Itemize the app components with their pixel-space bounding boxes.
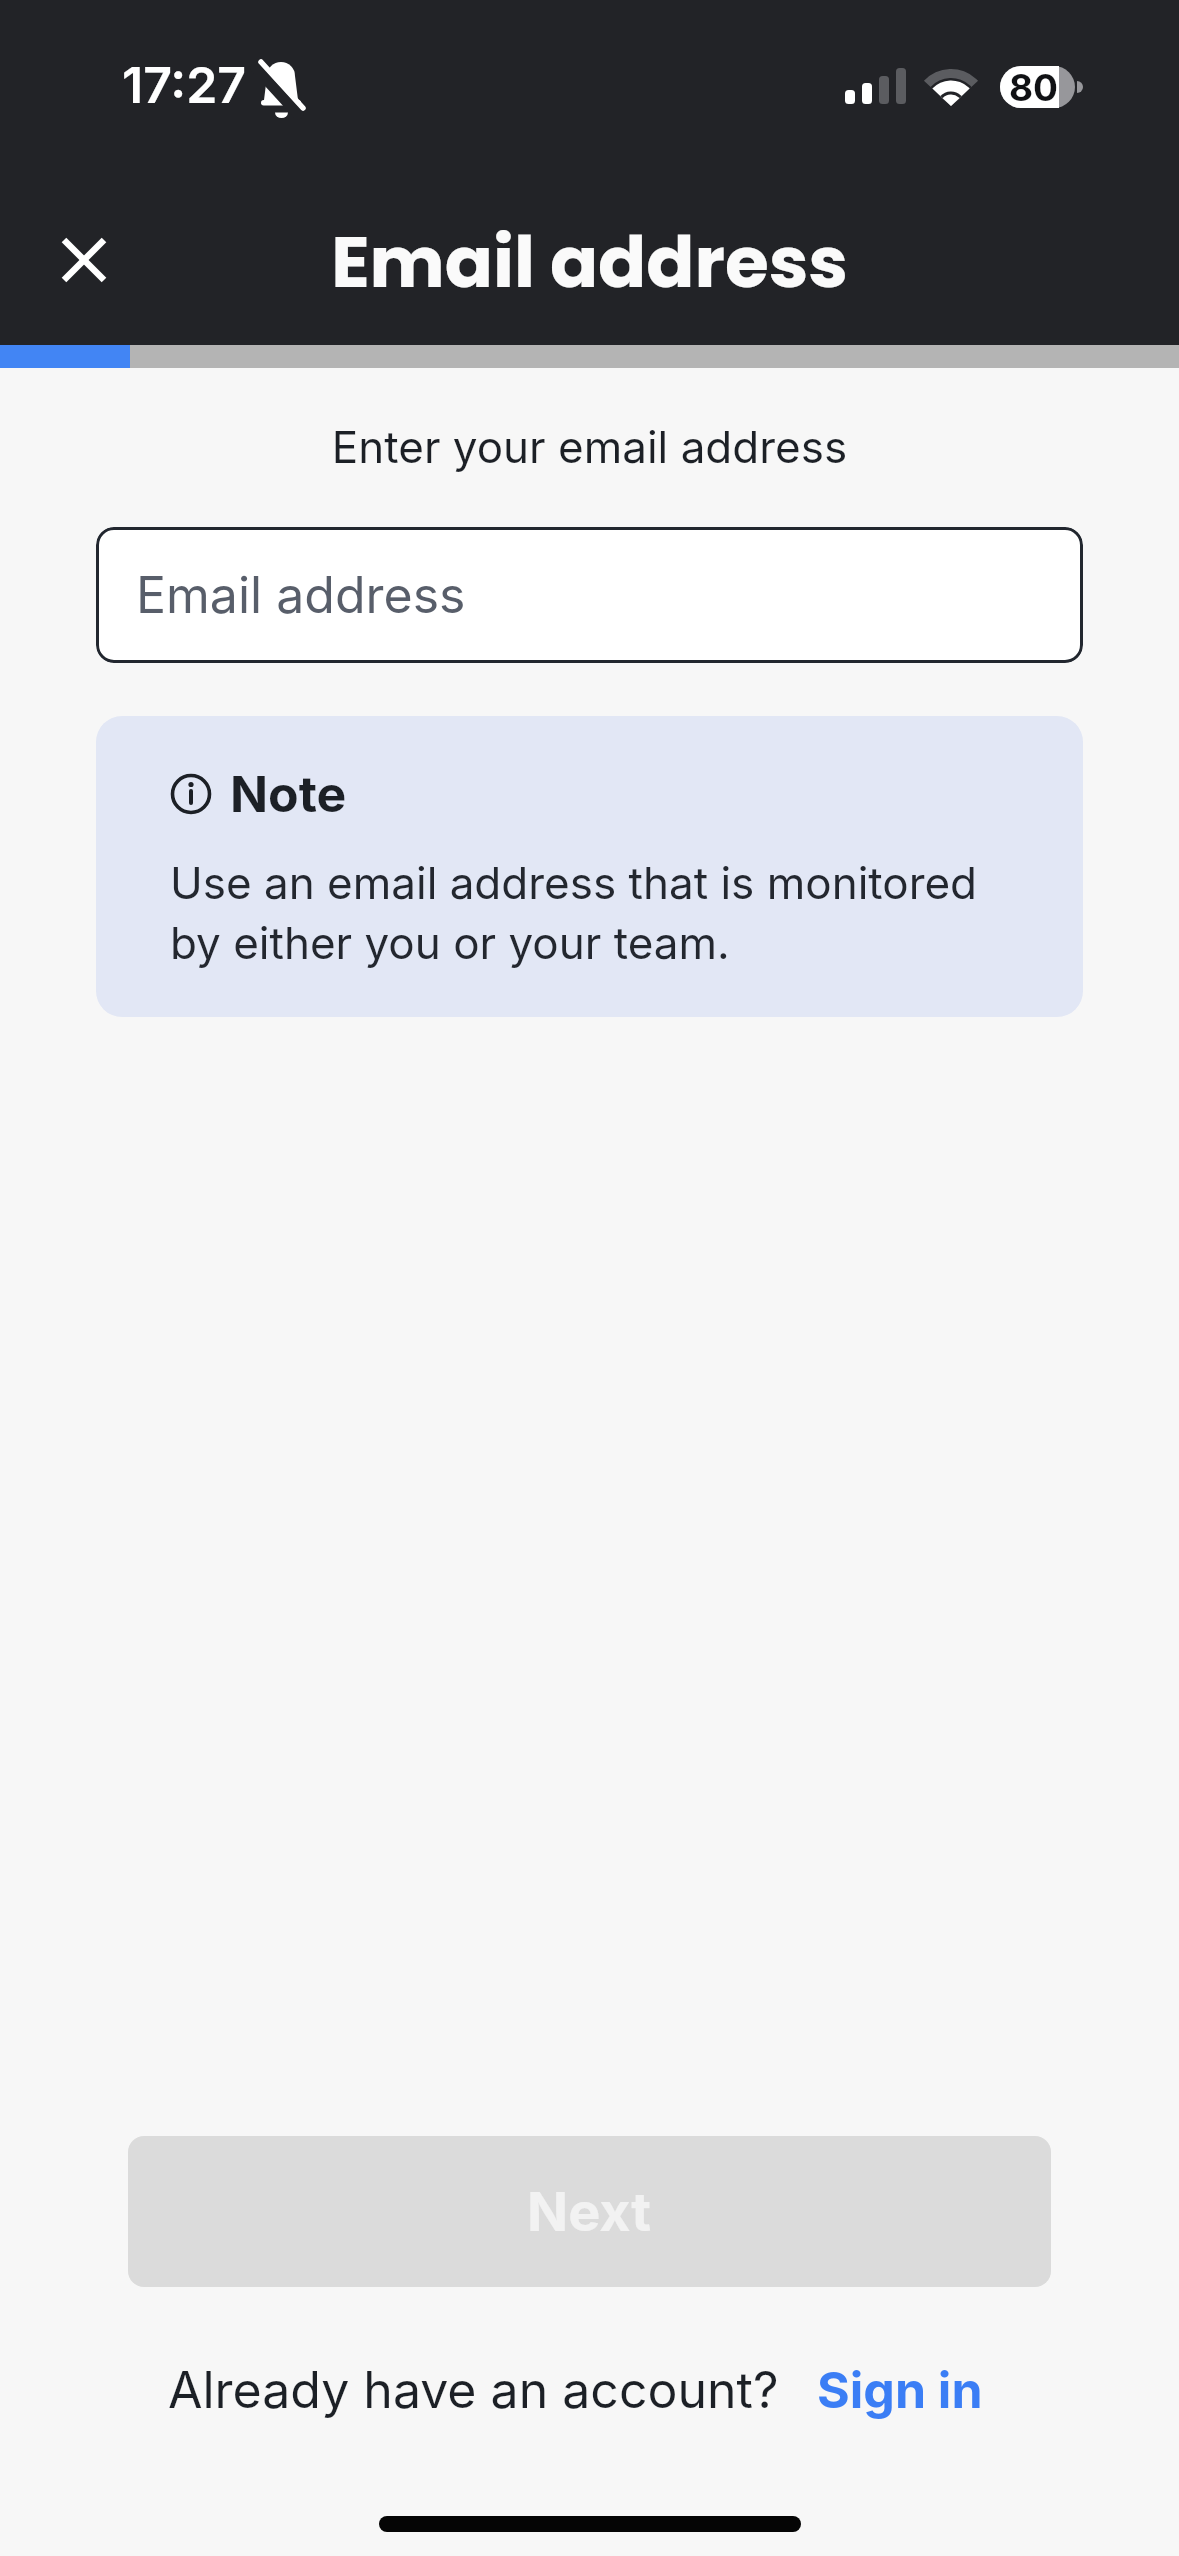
- button[interactable]: Next: [128, 2136, 1051, 2287]
- staticText: Sign in: [817, 2360, 983, 2420]
- staticText: 80: [1004, 65, 1063, 110]
- staticText: Email address: [136, 565, 466, 625]
- button[interactable]: Email address: [96, 527, 1083, 663]
- staticText: Email address: [0, 212, 1179, 311]
- staticText: Use an email address that is monitored b…: [170, 856, 978, 970]
- staticText: Enter your email address: [0, 420, 1179, 473]
- button[interactable]: [44, 220, 124, 300]
- staticText: Note: [230, 764, 347, 824]
- staticText: 17:27: [122, 55, 247, 115]
- staticText: Already have an account?: [168, 2360, 779, 2420]
- button[interactable]: Sign in: [817, 2360, 983, 2420]
- staticText: Next: [527, 2179, 652, 2244]
